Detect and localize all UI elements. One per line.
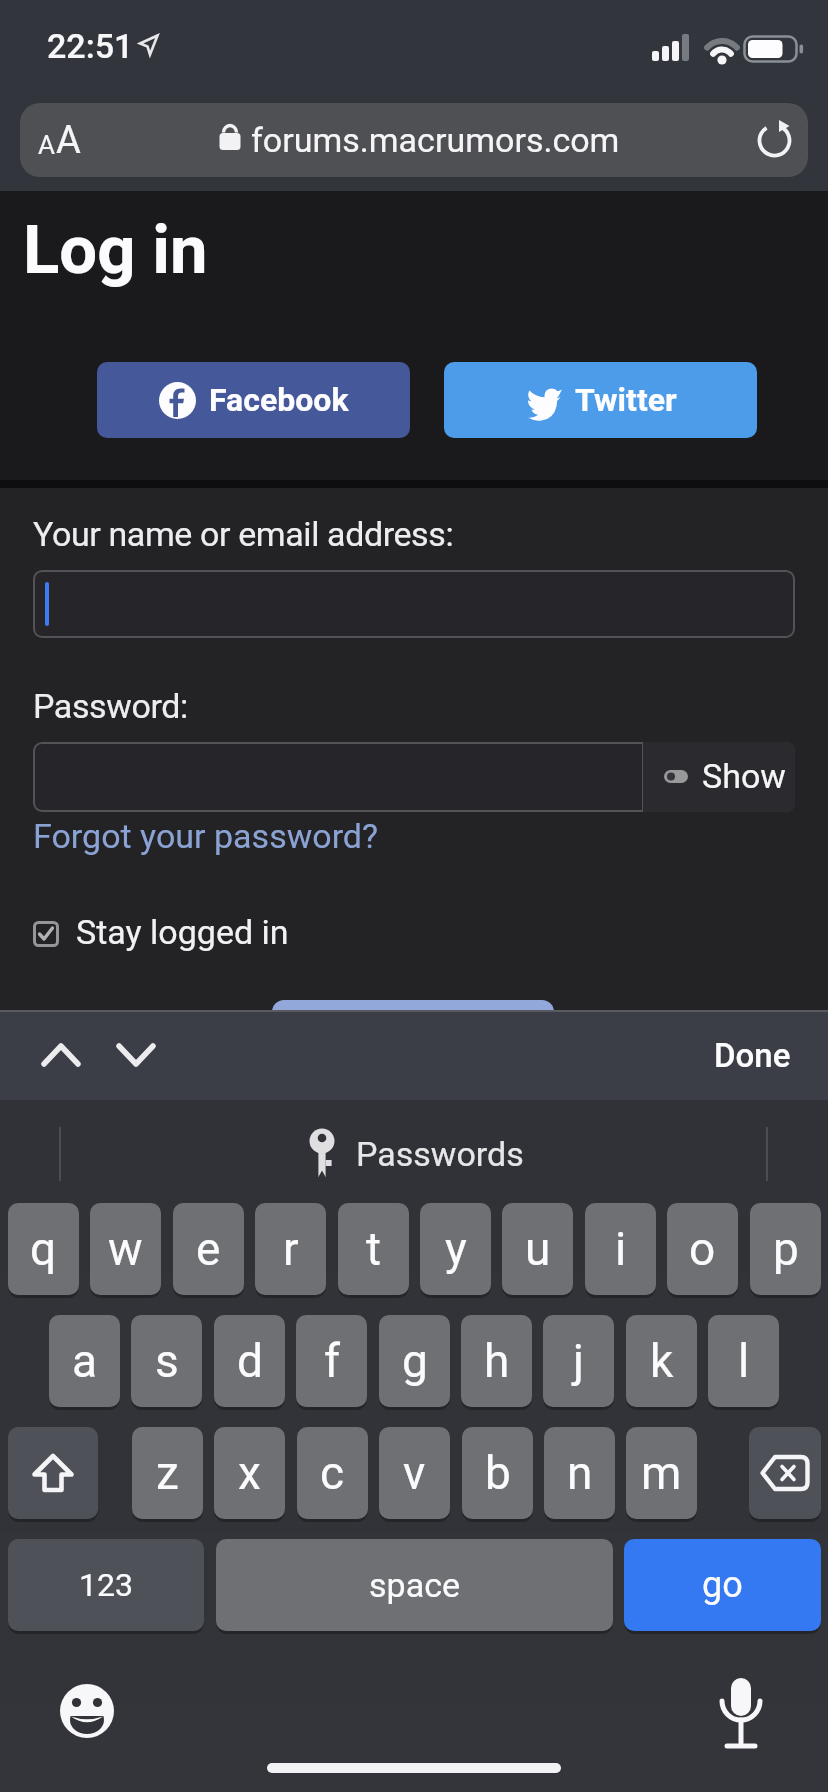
button[interactable]: Stay logged in	[33, 910, 333, 958]
button[interactable]: e	[173, 1203, 244, 1295]
button[interactable]: A	[20, 103, 808, 177]
button[interactable]: o	[667, 1203, 738, 1295]
staticText: e	[196, 1222, 221, 1276]
button[interactable]: r	[255, 1203, 326, 1295]
staticText: space	[369, 1565, 460, 1605]
staticText: f	[324, 1334, 340, 1388]
staticText: y	[445, 1222, 467, 1276]
button[interactable]: f	[296, 1315, 367, 1407]
staticText: c	[320, 1446, 345, 1500]
button[interactable]	[53, 1677, 121, 1745]
staticText: s	[155, 1334, 179, 1388]
button[interactable]: 123	[8, 1539, 204, 1631]
staticText: Password:	[33, 686, 188, 726]
staticText: j	[573, 1334, 585, 1388]
staticText: b	[485, 1446, 511, 1500]
button[interactable]: Facebook	[97, 362, 410, 438]
staticText: Forgot your password?	[33, 816, 379, 856]
staticText: o	[689, 1222, 716, 1276]
staticText: Show	[702, 756, 786, 796]
button[interactable]: Forgot your password?	[33, 816, 379, 856]
staticText: v	[403, 1446, 426, 1500]
staticText: Twitter	[575, 381, 677, 419]
button[interactable]: b	[462, 1427, 533, 1519]
button[interactable]: u	[502, 1203, 573, 1295]
button[interactable]: s	[131, 1315, 202, 1407]
staticText: p	[773, 1222, 799, 1276]
staticText: n	[567, 1446, 593, 1500]
button[interactable]	[8, 1427, 98, 1519]
staticText: x	[238, 1446, 261, 1500]
staticText: w	[108, 1222, 143, 1276]
button[interactable]: w	[90, 1203, 161, 1295]
staticText: u	[525, 1222, 551, 1276]
button[interactable]	[33, 570, 795, 638]
button[interactable]	[706, 1668, 774, 1758]
staticText: m	[641, 1446, 682, 1500]
staticText: z	[156, 1446, 179, 1500]
button[interactable]	[106, 1030, 176, 1080]
button[interactable]: p	[750, 1203, 821, 1295]
staticText: t	[366, 1222, 382, 1276]
staticText: 22:51	[47, 26, 134, 66]
staticText: Passwords	[356, 1134, 524, 1174]
button[interactable]: g	[379, 1315, 450, 1407]
staticText: l	[738, 1334, 750, 1388]
button[interactable]: k	[626, 1315, 697, 1407]
button[interactable]: h	[461, 1315, 532, 1407]
button[interactable]: n	[544, 1427, 615, 1519]
staticText: Log in	[23, 211, 208, 290]
button[interactable]	[749, 1427, 821, 1519]
button[interactable]: z	[132, 1427, 203, 1519]
staticText: A	[56, 118, 81, 163]
button[interactable]: i	[585, 1203, 656, 1295]
staticText: a	[72, 1334, 98, 1388]
staticText: Your name or email address:	[33, 514, 454, 554]
staticText: q	[30, 1222, 57, 1276]
button[interactable]: j	[543, 1315, 614, 1407]
button[interactable]: Done	[700, 1030, 804, 1080]
staticText: Stay logged in	[76, 912, 289, 952]
button[interactable]: x	[214, 1427, 285, 1519]
button[interactable]	[240, 1110, 588, 1194]
button[interactable]: y	[420, 1203, 491, 1295]
staticText: Done	[714, 1036, 791, 1075]
staticText: i	[615, 1222, 627, 1276]
button[interactable]	[28, 1030, 98, 1080]
button[interactable]: Show	[33, 742, 795, 812]
button[interactable]: d	[214, 1315, 285, 1407]
button[interactable]: a	[49, 1315, 120, 1407]
staticText: Facebook	[209, 381, 349, 419]
staticText: forums.macrumors.com	[251, 120, 620, 160]
button[interactable]: t	[338, 1203, 409, 1295]
button[interactable]: Show	[643, 742, 795, 812]
staticText: k	[650, 1334, 674, 1388]
button[interactable]: space	[216, 1539, 613, 1631]
staticText: h	[484, 1334, 510, 1388]
button[interactable]: m	[626, 1427, 697, 1519]
button[interactable]: Twitter	[444, 362, 757, 438]
staticText: r	[283, 1222, 299, 1276]
staticText: A	[38, 130, 55, 160]
button[interactable]: q	[8, 1203, 79, 1295]
button[interactable]: v	[379, 1427, 450, 1519]
button[interactable]: c	[297, 1427, 368, 1519]
button[interactable]: go	[624, 1539, 821, 1631]
staticText: g	[402, 1334, 428, 1388]
staticText: go	[702, 1564, 743, 1606]
button[interactable]: l	[708, 1315, 779, 1407]
staticText: 123	[79, 1566, 133, 1604]
staticText: d	[237, 1334, 263, 1388]
